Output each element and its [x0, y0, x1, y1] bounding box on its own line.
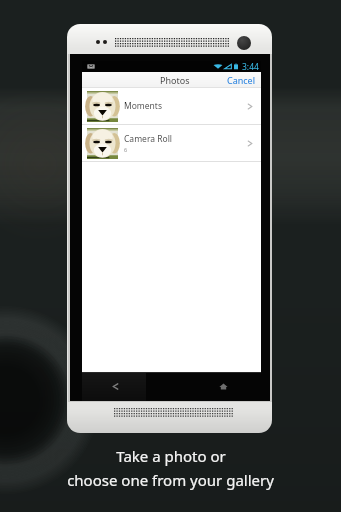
staticText: Photos — [160, 74, 190, 86]
button[interactable]: Back — [103, 372, 128, 401]
staticText: 6 — [124, 146, 128, 153]
staticText: Cancel — [227, 74, 256, 86]
button[interactable]: Cancel — [214, 74, 261, 86]
staticText: choose one from your gallery — [67, 470, 274, 490]
staticText: 3:44 — [242, 61, 259, 72]
button[interactable]: Home — [211, 372, 236, 401]
button[interactable]: Camera Roll — [82, 125, 261, 161]
button[interactable]: Moments — [82, 88, 261, 124]
staticText: Camera Roll — [124, 133, 173, 145]
staticText: Take a photo or — [116, 446, 226, 466]
staticText: Moments — [124, 100, 162, 112]
